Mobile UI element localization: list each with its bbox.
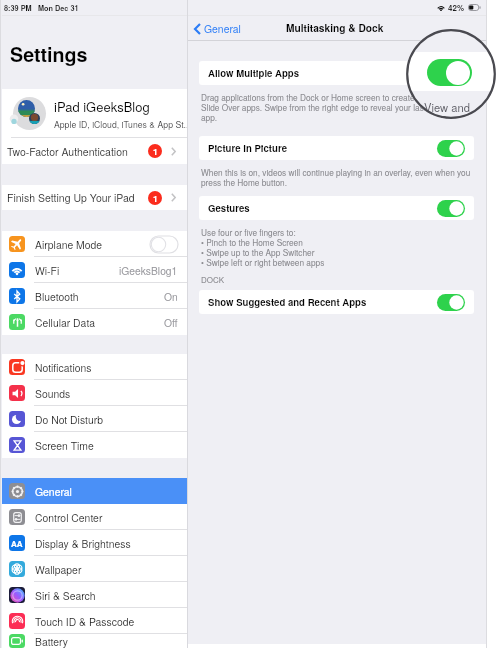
button[interactable]: Touch ID & Passcode — [2, 608, 187, 634]
staticText: View and — [424, 99, 470, 115]
button[interactable]: Finish Setting Up Your iPad — [2, 185, 187, 210]
staticText: Battery — [35, 634, 69, 648]
button[interactable]: On — [437, 65, 465, 82]
button[interactable]: Notifications — [2, 354, 187, 380]
staticText: 42% — [448, 2, 465, 13]
staticText: Drag applications from the Dock or Home … — [201, 91, 470, 123]
staticText: Settings — [10, 40, 88, 68]
button[interactable]: Siri & Search — [2, 582, 187, 608]
staticText: 1 — [153, 145, 158, 157]
button[interactable]: Wi-Fi — [2, 257, 187, 283]
button[interactable]: Screen Time — [2, 432, 187, 458]
staticText: Use four or five fingers to: • Pinch to … — [201, 226, 325, 268]
staticText: Sounds — [35, 386, 71, 401]
button[interactable]: Show Suggested and Recent Apps — [199, 290, 474, 314]
button[interactable]: Do Not Disturb — [2, 406, 187, 432]
staticText: iPad iGeeksBlog — [54, 97, 150, 116]
staticText: Apple ID, iCloud, iTunes & App St... — [54, 118, 187, 130]
button[interactable]: Picture in Picture — [199, 136, 474, 160]
staticText: General — [35, 484, 72, 499]
staticText: DOCK — [201, 274, 225, 285]
button[interactable]: iPad iGeeksBlog — [2, 89, 187, 137]
staticText: Allow Multiple Apps — [208, 66, 300, 80]
staticText: Touch ID & Passcode — [35, 614, 135, 629]
button[interactable]: Off — [150, 236, 178, 253]
staticText: Two-Factor Authentication — [7, 144, 128, 159]
staticText: Gestures — [208, 201, 250, 215]
button[interactable]: Cellular Data — [2, 309, 187, 335]
button[interactable]: Control Center — [2, 504, 187, 530]
button[interactable]: Allow Multiple Apps — [199, 61, 474, 85]
staticText: Airplane Mode — [35, 237, 103, 252]
staticText: Picture in Picture — [208, 141, 288, 155]
staticText: On — [164, 289, 178, 304]
staticText: Control Center — [35, 510, 103, 525]
button[interactable]: Two-Factor Authentication — [2, 138, 187, 164]
button[interactable]: Gestures — [199, 196, 474, 220]
button[interactable]: On — [437, 294, 465, 311]
staticText: 1 — [153, 192, 158, 204]
staticText: Do Not Disturb — [35, 412, 103, 427]
staticText: Bluetooth — [35, 289, 79, 304]
staticText: Multitasking & Dock — [286, 21, 384, 36]
button[interactable]: Wallpaper — [2, 556, 187, 582]
staticText: Siri & Search — [35, 588, 96, 603]
staticText: Finish Setting Up Your iPad — [7, 190, 135, 205]
staticText: When this is on, videos will continue pl… — [201, 166, 471, 188]
button[interactable]: AA — [2, 530, 187, 556]
button[interactable]: General — [2, 478, 187, 504]
staticText: Cellular Data — [35, 315, 96, 330]
staticText: General — [204, 21, 241, 36]
button[interactable]: Battery — [2, 634, 187, 648]
staticText: Wallpaper — [35, 562, 82, 577]
staticText: Screen Time — [35, 438, 94, 453]
staticText: Display & Brightness — [35, 536, 131, 551]
staticText: Show Suggested and Recent Apps — [208, 295, 367, 309]
staticText: Off — [164, 315, 178, 330]
staticText: Mon Dec 31 — [38, 3, 79, 13]
button[interactable]: Bluetooth — [2, 283, 187, 309]
button[interactable]: Airplane Mode — [2, 231, 187, 257]
button[interactable]: General — [194, 21, 245, 36]
staticText: Notifications — [35, 360, 92, 375]
staticText: iGeeksBlog1 — [119, 263, 178, 278]
staticText: 8:39 PM — [4, 3, 32, 13]
button[interactable]: On — [437, 140, 465, 157]
button[interactable]: On — [437, 200, 465, 217]
button[interactable]: Sounds — [2, 380, 187, 406]
staticText: Wi-Fi — [35, 263, 60, 278]
staticText: AA — [11, 538, 23, 549]
staticText: Sp — [440, 112, 454, 119]
